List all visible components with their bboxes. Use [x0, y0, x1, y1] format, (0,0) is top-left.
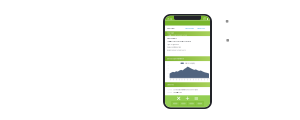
staticText: View usage — [197, 28, 205, 29]
button[interactable]: Overview — [167, 28, 174, 29]
button[interactable]: Close — [177, 97, 180, 100]
staticText: Next bill issued — [173, 92, 182, 93]
staticText: ıll ◗ — [203, 17, 208, 20]
staticText: 1 Jan – 31 Jan 2024 — [167, 43, 179, 45]
button[interactable] — [187, 101, 196, 106]
staticText: Plan summary — [167, 38, 177, 39]
button[interactable] — [171, 101, 179, 106]
button[interactable] — [179, 101, 187, 106]
staticText: 14 Feb — [167, 92, 172, 93]
staticText: Unlimited calls and texts with 50 GB of … — [167, 41, 191, 42]
button[interactable]: Add — [186, 97, 189, 100]
staticText: Your plan — [167, 32, 174, 34]
button[interactable] — [196, 101, 204, 106]
button[interactable]: View usage — [197, 28, 205, 29]
staticText: Data used this period — [167, 46, 181, 48]
staticText: Data usage this month — [167, 58, 184, 60]
staticText: 9:41 — [167, 17, 174, 20]
staticText: Manage plan — [185, 28, 194, 29]
staticText: Overview — [167, 28, 174, 29]
staticText: Daily usage (GB) — [185, 62, 195, 64]
staticText: Updates — [167, 84, 174, 86]
button[interactable]: Manage plan — [185, 28, 194, 29]
staticText: Scheduled maintenance overnight — [173, 89, 197, 91]
staticText: Balance due 14 February — [167, 49, 186, 51]
staticText: 12 Feb — [167, 89, 172, 91]
staticText: Unlimited 50 GB · renews 14 Feb — [167, 34, 187, 36]
